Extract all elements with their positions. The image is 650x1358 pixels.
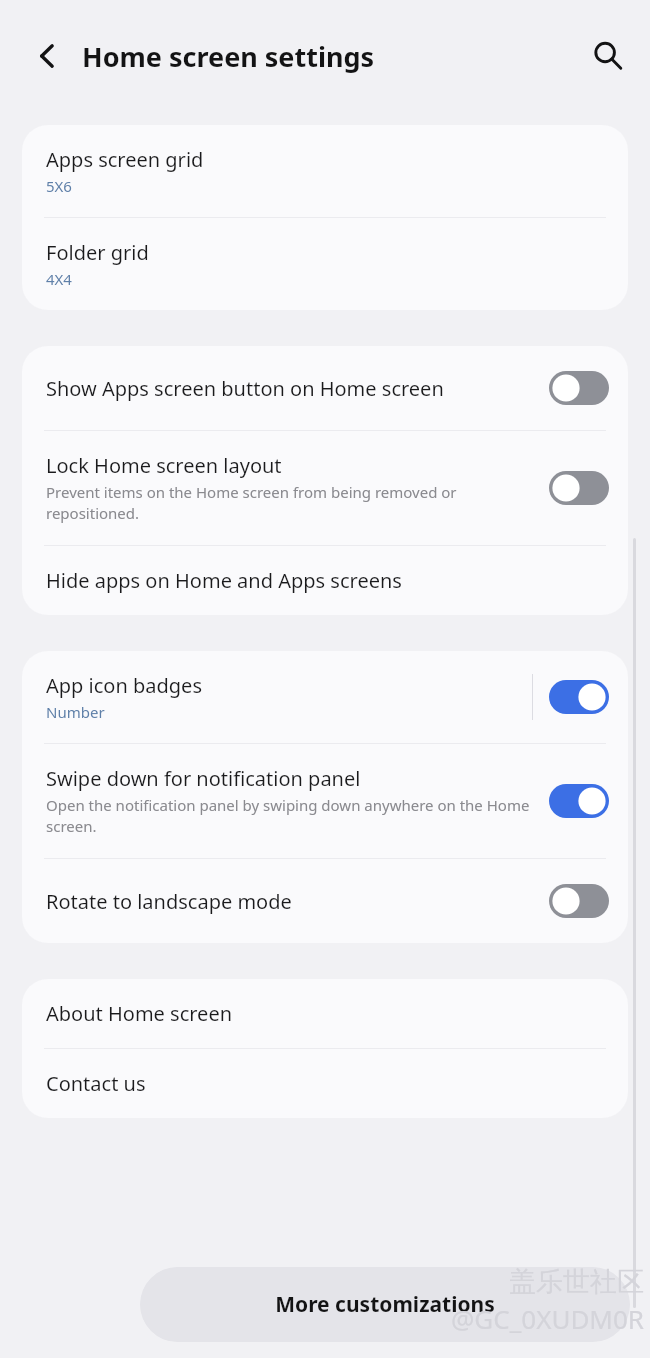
staticText: About Home screen bbox=[46, 1000, 233, 1027]
staticText: 4X4 bbox=[46, 269, 72, 289]
staticText: Hide apps on Home and Apps screens bbox=[46, 567, 402, 594]
staticText: 5X6 bbox=[46, 176, 72, 196]
button[interactable]: Show Apps screen button on Home screen bbox=[22, 346, 628, 430]
button[interactable]: Contact us bbox=[22, 1049, 628, 1118]
button[interactable]: App icon badges bbox=[22, 651, 628, 743]
button[interactable]: Back bbox=[20, 28, 76, 84]
staticText: Contact us bbox=[46, 1070, 146, 1097]
staticText: Rotate to landscape mode bbox=[46, 888, 292, 915]
button[interactable]: Hide apps on Home and Apps screens bbox=[22, 546, 628, 615]
staticText: Show Apps screen button on Home screen bbox=[46, 375, 444, 402]
staticText: Number bbox=[46, 702, 105, 722]
staticText: Swipe down for notification panel bbox=[46, 765, 361, 792]
staticText: Home screen settings bbox=[82, 38, 580, 75]
button[interactable]: Switch on bbox=[548, 780, 610, 822]
staticText: Folder grid bbox=[46, 239, 149, 266]
button[interactable]: Rotate to landscape mode bbox=[22, 859, 628, 943]
button[interactable]: Search bbox=[580, 28, 636, 84]
button[interactable]: Apps screen grid bbox=[22, 125, 628, 217]
button[interactable]: Switch on bbox=[548, 676, 610, 718]
staticText: Open the notification panel by swiping d… bbox=[46, 795, 540, 837]
staticText: Apps screen grid bbox=[46, 146, 204, 173]
button[interactable]: Switch off bbox=[548, 467, 610, 509]
staticText: 盖乐世社区 bbox=[509, 1265, 644, 1299]
staticText: App icon badges bbox=[46, 672, 202, 699]
button[interactable]: More customizations bbox=[140, 1267, 630, 1342]
staticText: More customizations bbox=[275, 1290, 495, 1319]
button[interactable]: About Home screen bbox=[22, 979, 628, 1048]
staticText: @GC_0XUDM0R bbox=[451, 1301, 644, 1336]
button[interactable]: Lock Home screen layout bbox=[22, 431, 628, 545]
button[interactable]: Switch off bbox=[548, 880, 610, 922]
button[interactable]: Switch off bbox=[548, 367, 610, 409]
button[interactable]: Folder grid bbox=[22, 218, 628, 310]
staticText: Prevent items on the Home screen from be… bbox=[46, 482, 540, 524]
button[interactable]: Swipe down for notification panel bbox=[22, 744, 628, 858]
staticText: Lock Home screen layout bbox=[46, 452, 282, 479]
